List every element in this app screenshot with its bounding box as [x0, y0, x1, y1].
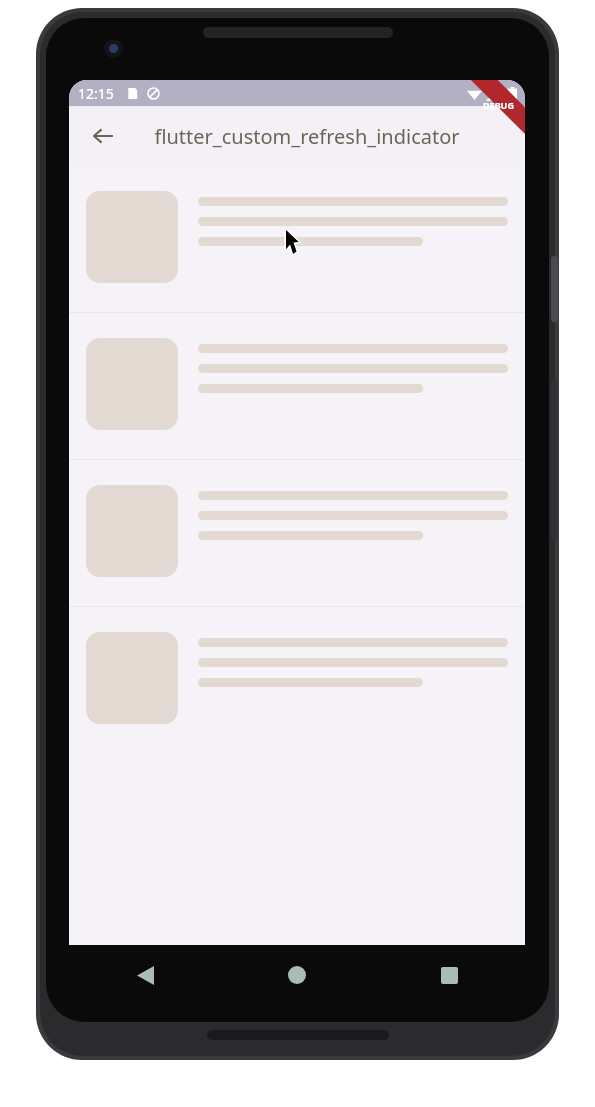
button[interactable]: Back	[81, 114, 125, 158]
staticText: 12:15	[78, 84, 114, 103]
staticText: flutter_custom_refresh_indicator	[154, 123, 460, 150]
button[interactable]: Recent apps	[373, 945, 525, 1005]
button[interactable]	[69, 607, 525, 753]
staticText: DEBUG	[483, 99, 514, 111]
button[interactable]: Back	[69, 945, 221, 1005]
button[interactable]	[69, 166, 525, 312]
button[interactable]	[69, 460, 525, 606]
button[interactable]: Home	[221, 945, 373, 1005]
button[interactable]	[69, 313, 525, 459]
